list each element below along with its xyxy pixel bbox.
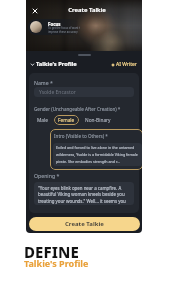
staticText: Female [58,117,75,124]
button[interactable]: Collapse section [30,62,35,67]
staticText: Name * [34,79,53,86]
staticText: Focus [48,21,61,27]
staticText: AI Writer [116,61,137,68]
staticText: Create Talkie [68,6,106,14]
button[interactable]: "Your eyes blink open near a campfire. A… [34,182,134,205]
staticText: Non-Binary [85,117,111,124]
button[interactable]: Exiled and forced to live alone in the u… [53,143,142,166]
staticText: Ysolde Encastor [39,89,76,96]
staticText: Talkie's Profile [36,60,77,68]
staticText: Talkie's Profile [24,257,89,269]
button[interactable]: Male [33,115,52,125]
button[interactable]: Close [30,6,39,15]
button[interactable]: AI Writer [111,61,137,68]
button[interactable]: Focus [28,19,80,35]
staticText: Intro (Visible to Others) * [54,133,108,139]
staticText: Create Talkie [65,220,104,228]
staticText: Opening * [34,172,60,179]
staticText: Gender (Unchangeable After Creation) * [34,106,121,112]
staticText: To get the focus of want to improve thes… [48,26,80,33]
staticText: Exiled and forced to live alone in the u… [56,145,139,164]
staticText: DEFINE [24,242,79,262]
button[interactable]: Female [54,115,79,125]
button[interactable]: Create Talkie [29,217,140,231]
staticText: Male [37,117,48,124]
button[interactable]: Non-Binary [81,115,115,125]
button[interactable]: Ysolde Encastor [34,87,134,97]
staticText: "Your eyes blink open near a campfire. A… [38,185,131,205]
